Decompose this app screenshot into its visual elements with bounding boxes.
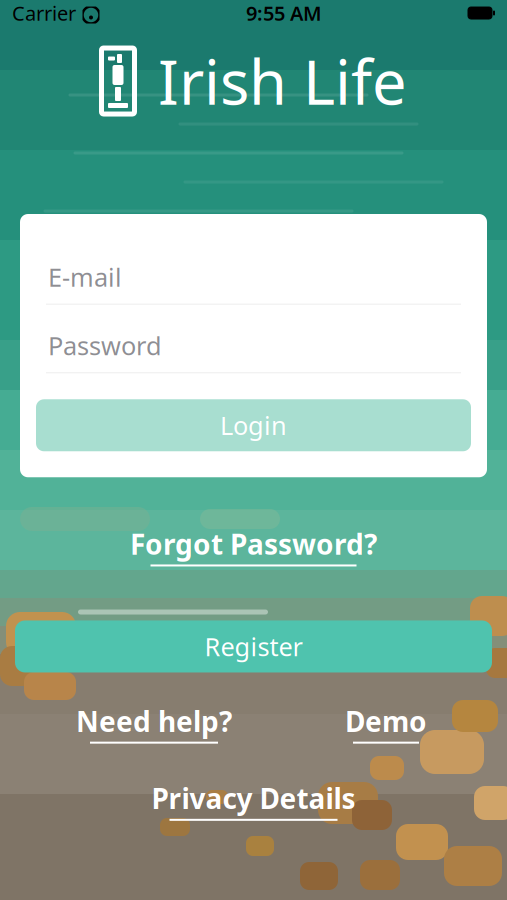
button[interactable]: Login xyxy=(36,399,471,451)
staticText: 9:55 AM xyxy=(246,0,322,26)
staticText: Privacy Details xyxy=(151,780,355,817)
button[interactable]: Register xyxy=(15,620,492,672)
staticText: Carrier xyxy=(12,0,76,26)
button[interactable]: Need help? xyxy=(68,696,240,750)
staticText: Irish Life xyxy=(158,40,407,122)
button[interactable]: Privacy Details xyxy=(141,774,365,827)
staticText: Forgot Password? xyxy=(130,525,377,562)
staticText: Register xyxy=(204,630,302,663)
button[interactable]: Forgot Password? xyxy=(120,519,387,572)
staticText: Login xyxy=(220,408,287,442)
staticText: E-mail xyxy=(48,260,122,294)
staticText: Password xyxy=(48,329,162,362)
button[interactable]: Demo xyxy=(337,696,435,750)
staticText: Demo xyxy=(345,702,427,740)
staticText: Need help? xyxy=(76,702,232,740)
